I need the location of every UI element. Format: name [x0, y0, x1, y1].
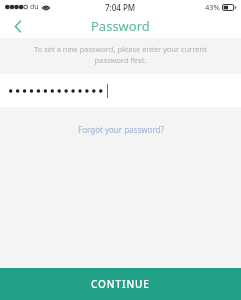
staticText: 43%	[205, 2, 220, 12]
staticText: To set a new password, please enter your…	[26, 44, 215, 65]
staticText: Forgot your password?	[78, 124, 164, 135]
staticText: CONTINUE	[91, 277, 150, 291]
staticText: 7:04 PM	[105, 2, 136, 13]
button[interactable]: CONTINUE	[0, 268, 241, 300]
staticText: du	[30, 2, 39, 12]
button[interactable]: Back	[0, 14, 36, 38]
button[interactable]	[0, 74, 241, 107]
staticText: Password	[91, 17, 150, 35]
button[interactable]: Forgot your password?	[72, 121, 170, 138]
